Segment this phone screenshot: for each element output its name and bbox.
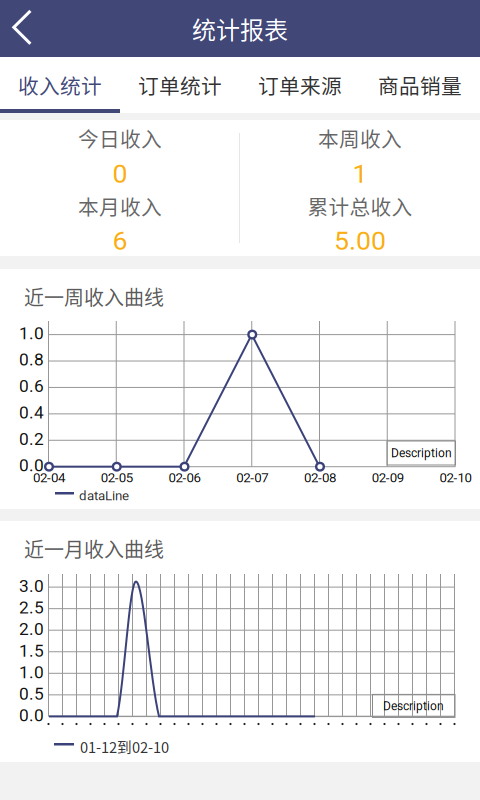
staticText: 本月收入 [78,191,162,221]
staticText: 1 [352,158,367,189]
staticText: 1.5 [19,641,44,661]
staticText: 02-07 [236,470,268,486]
staticText: 3.0 [19,576,44,596]
staticText: 2.0 [19,619,44,639]
staticText: 5.00 [334,225,386,256]
staticText: 商品销量 [378,70,462,100]
staticText: Description [383,699,444,713]
staticText: 今日收入 [78,123,162,153]
staticText: 02-08 [304,470,336,486]
button[interactable]: 订单统计 [120,57,240,113]
staticText: 2.5 [19,597,44,618]
staticText: 累计总收入 [307,191,412,221]
staticText: 0.2 [19,429,44,449]
button[interactable]: 商品销量 [360,57,480,113]
staticText: 01-12到02-10 [80,736,169,757]
staticText: 1.0 [19,323,44,343]
staticText: 收入统计 [18,70,102,100]
staticText: 0.5 [19,684,44,704]
staticText: 02-09 [372,470,404,486]
staticText: 02-04 [33,470,65,486]
staticText: 0.0 [19,455,44,475]
staticText: 统计报表 [192,11,288,46]
staticText: 0.8 [19,349,44,370]
staticText: 0.6 [19,376,44,396]
button[interactable]: 收入统计 [0,57,120,113]
staticText: 02-10 [439,470,471,486]
staticText: 近一周收入曲线 [24,282,164,311]
staticText: dataLine [79,488,129,504]
staticText: 本周收入 [318,123,402,153]
staticText: 近一月收入曲线 [24,534,164,563]
button[interactable]: Back [0,0,52,57]
staticText: 0.4 [19,402,44,423]
staticText: 订单来源 [258,70,342,100]
staticText: 0.0 [19,705,44,725]
staticText: 订单统计 [138,70,222,100]
button[interactable]: 订单来源 [240,57,360,113]
staticText: 6 [112,225,127,256]
staticText: 02-05 [101,470,133,486]
staticText: Description [391,446,452,460]
staticText: 1.0 [19,662,44,682]
staticText: 0 [112,158,127,189]
staticText: 02-06 [168,470,200,486]
